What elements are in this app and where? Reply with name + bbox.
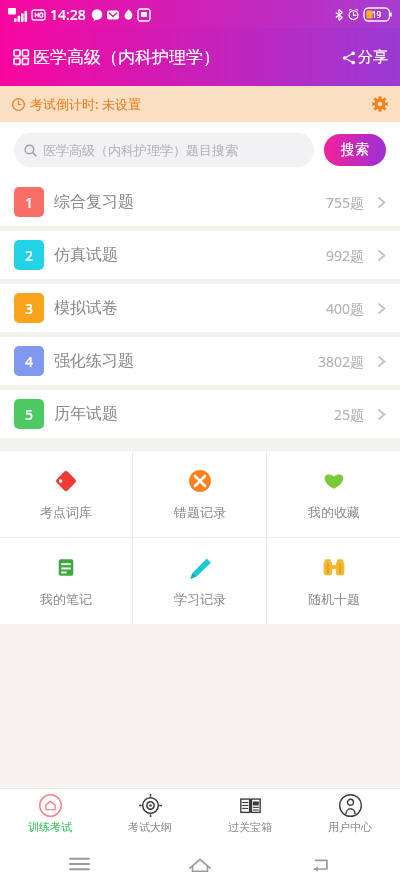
button[interactable]: Home	[177, 841, 223, 887]
button[interactable]: 我的收藏	[267, 451, 400, 537]
staticText: 强化练习题	[54, 351, 134, 371]
staticText: 考点词库	[40, 504, 92, 520]
staticText: 随机十题	[308, 591, 360, 607]
button[interactable]: 用户中心	[300, 789, 400, 839]
button[interactable]: 训练考试	[0, 789, 100, 839]
staticText: 5	[25, 405, 34, 424]
staticText: 搜索	[341, 141, 369, 159]
staticText: 错题记录	[174, 504, 226, 520]
staticText: 400题	[326, 299, 365, 318]
button[interactable]: 我的笔记	[0, 538, 132, 624]
staticText: 我的笔记	[40, 591, 92, 607]
staticText: 仿真试题	[54, 245, 118, 265]
button[interactable]: 学习记录	[133, 538, 266, 624]
staticText: 19	[372, 9, 382, 20]
button[interactable]: 错题记录	[133, 451, 266, 537]
staticText: 3802题	[318, 352, 365, 371]
button[interactable]: 2	[0, 231, 400, 279]
staticText: 3	[25, 299, 34, 318]
staticText: 14:28	[50, 5, 86, 24]
staticText: 医学高级（内科护理学）	[33, 47, 220, 68]
button[interactable]: Back	[298, 841, 344, 887]
button[interactable]: 过关宝箱	[200, 789, 300, 839]
button[interactable]: Recent apps	[56, 841, 102, 887]
staticText: 考试倒计时: 未设置	[30, 95, 141, 113]
button[interactable]: 医学高级（内科护理学）题目搜索	[14, 133, 314, 167]
staticText: 1	[25, 193, 34, 212]
button[interactable]: 考点词库	[0, 451, 132, 537]
staticText: 2	[25, 246, 34, 265]
staticText: 分享	[358, 48, 388, 67]
staticText: 考试大纲	[128, 820, 172, 834]
staticText: 医学高级（内科护理学）题目搜索	[43, 142, 238, 158]
staticText: 4	[25, 352, 34, 371]
button[interactable]: 随机十题	[267, 538, 400, 624]
button[interactable]: 4	[0, 337, 400, 385]
staticText: 用户中心	[328, 820, 372, 834]
staticText: 我的收藏	[308, 504, 360, 520]
staticText: 学习记录	[174, 591, 226, 607]
button[interactable]: 搜索	[324, 134, 386, 166]
button[interactable]: 5	[0, 390, 400, 438]
staticText: 755题	[326, 193, 365, 212]
staticText: 25题	[334, 405, 365, 424]
button[interactable]: 分享	[330, 38, 400, 77]
button[interactable]: Settings	[360, 88, 400, 120]
button[interactable]: 3	[0, 284, 400, 332]
staticText: 992题	[326, 246, 365, 265]
button[interactable]: 1	[0, 178, 400, 226]
staticText: 模拟试卷	[54, 298, 118, 318]
staticText: 训练考试	[28, 820, 72, 834]
staticText: 综合复习题	[54, 192, 134, 212]
button[interactable]: 考试大纲	[100, 789, 200, 839]
staticText: 过关宝箱	[228, 820, 272, 834]
staticText: 历年试题	[54, 404, 118, 424]
